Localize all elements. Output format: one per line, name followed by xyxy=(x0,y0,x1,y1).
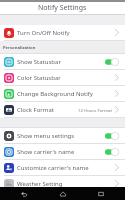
button[interactable]: Show menu settings xyxy=(0,128,125,144)
staticText: 12 Hours Format xyxy=(78,107,113,113)
button[interactable]: Recent apps xyxy=(86,187,116,200)
staticText: Clock Format xyxy=(17,106,54,114)
button[interactable]: Weather Setting xyxy=(0,176,125,192)
button[interactable]: Color Statusbar xyxy=(0,70,125,86)
staticText: Color Statusbar xyxy=(17,74,61,82)
staticText: Turn On/Off Notify xyxy=(17,29,70,37)
button[interactable]: Turn On/Off Notify xyxy=(0,25,125,41)
staticText: Customize carrier's name xyxy=(17,164,89,172)
button[interactable]: Clock Format xyxy=(0,102,125,118)
staticText: Show Statusbar xyxy=(17,58,61,66)
staticText: Change Background Notify xyxy=(17,90,93,98)
button[interactable]: Show Statusbar xyxy=(0,54,125,70)
button[interactable]: Customize carrier's name xyxy=(0,160,125,176)
staticText: Show menu settings xyxy=(17,132,75,140)
staticText: Notify Settings xyxy=(38,3,87,13)
button[interactable]: Change Background Notify xyxy=(0,86,125,102)
staticText: Personalization xyxy=(3,45,36,51)
staticText: Weather Setting xyxy=(17,180,63,188)
button[interactable]: Home xyxy=(48,187,78,200)
button[interactable]: Show carrier's name xyxy=(0,144,125,160)
staticText: Show carrier's name xyxy=(17,148,75,156)
button[interactable]: Back xyxy=(9,187,39,200)
